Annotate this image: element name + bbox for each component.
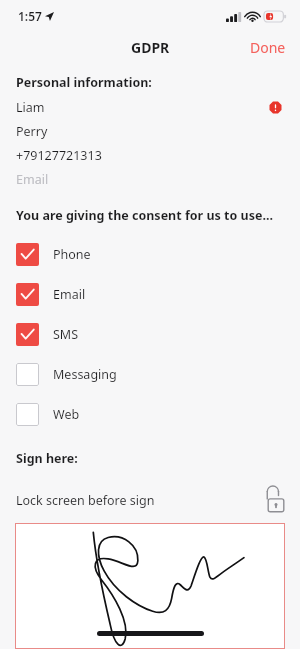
button[interactable]: Messaging xyxy=(0,354,300,394)
staticText: Email xyxy=(16,171,49,188)
staticText: GDPR xyxy=(131,38,170,57)
staticText: Phone xyxy=(53,246,91,263)
staticText: Lock screen before sign xyxy=(16,492,155,509)
staticText: SMS xyxy=(53,326,79,343)
staticText: Perry xyxy=(16,123,48,140)
button[interactable]: Phone xyxy=(0,234,300,274)
button[interactable]: Liam xyxy=(0,95,300,119)
staticText: Messaging xyxy=(53,366,117,383)
staticText: Sign here: xyxy=(16,450,78,467)
button[interactable]: +79127721313 xyxy=(0,143,300,167)
button[interactable]: Perry xyxy=(0,119,300,143)
button[interactable]: Web xyxy=(0,394,300,434)
staticText: Liam xyxy=(16,99,45,116)
staticText: Email xyxy=(53,286,86,303)
button[interactable]: Signature area xyxy=(15,523,285,649)
staticText: Done xyxy=(250,38,286,57)
staticText: Web xyxy=(53,406,80,423)
button[interactable]: SMS xyxy=(0,314,300,354)
button[interactable]: Lock screen xyxy=(266,486,286,514)
staticText: 1:57 xyxy=(18,8,42,24)
button[interactable]: Email xyxy=(0,274,300,314)
button[interactable]: Done xyxy=(236,34,300,61)
staticText: You are giving the consent for us to use… xyxy=(16,207,273,224)
staticText: Personal information: xyxy=(16,74,152,91)
staticText: +79127721313 xyxy=(16,147,102,164)
other: Error xyxy=(269,101,282,114)
button[interactable]: Email xyxy=(0,167,300,191)
